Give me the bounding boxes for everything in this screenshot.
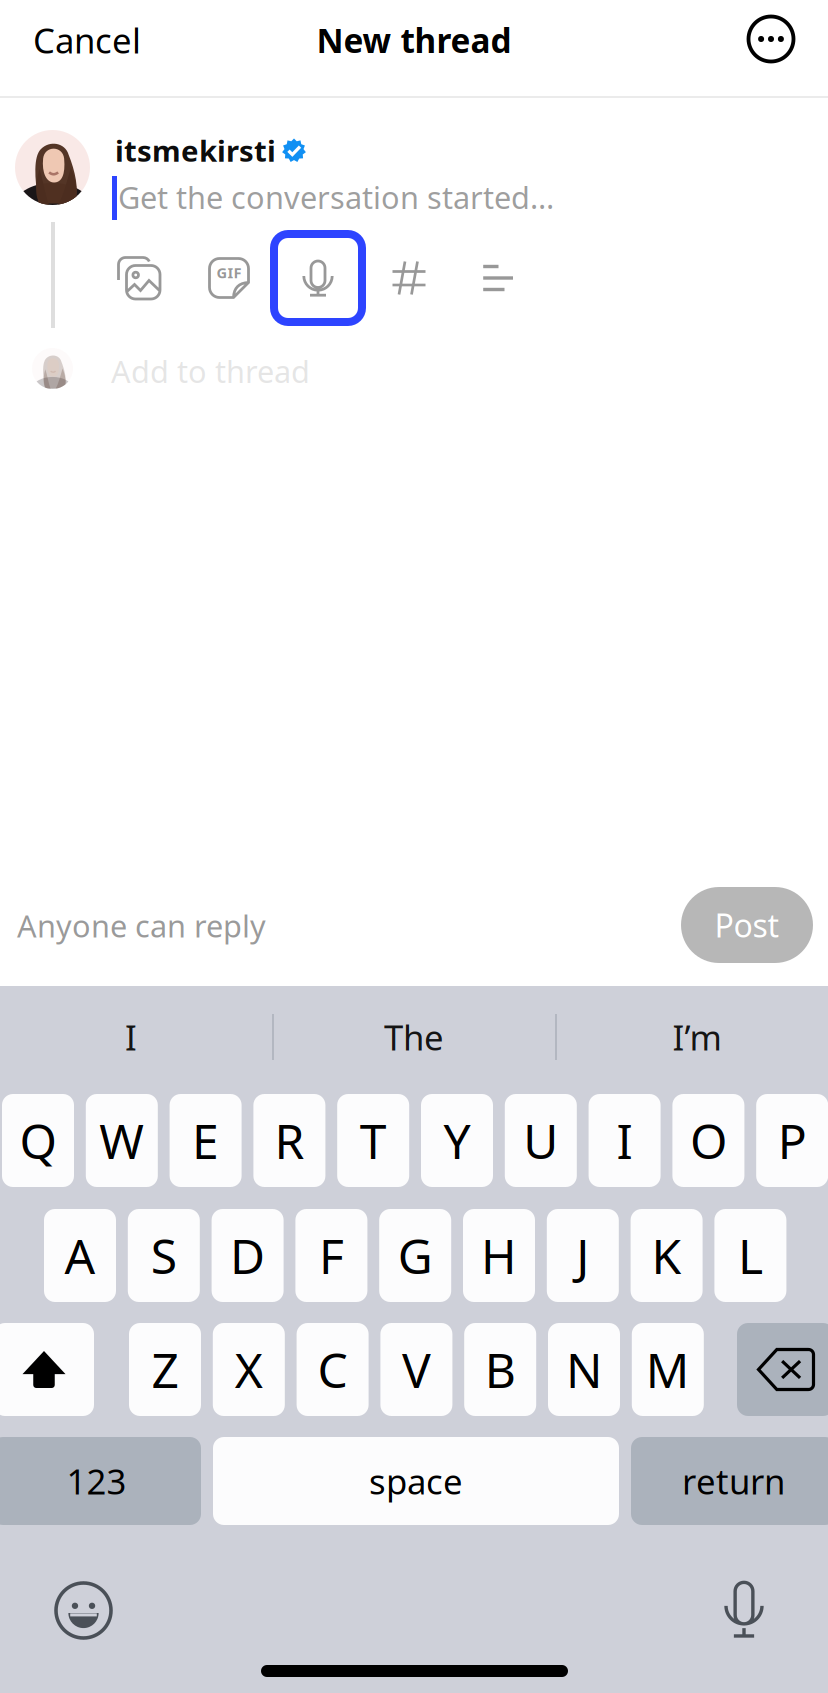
staticText: N: [566, 1338, 602, 1401]
staticText: I: [125, 1014, 137, 1060]
button[interactable]: E: [170, 1094, 242, 1187]
button[interactable]: Cancel: [33, 0, 193, 80]
staticText: Get the conversation started…: [118, 177, 554, 217]
staticText: M: [646, 1338, 690, 1401]
button[interactable]: Z: [129, 1323, 201, 1416]
button[interactable]: Record voice: [274, 234, 362, 322]
staticText: New thread: [316, 18, 511, 62]
button[interactable]: B: [464, 1323, 536, 1416]
button[interactable]: Delete: [737, 1323, 828, 1416]
button[interactable]: A: [44, 1209, 116, 1302]
staticText: X: [235, 1338, 263, 1401]
staticText: Post: [714, 904, 779, 946]
staticText: return: [682, 1458, 785, 1504]
staticText: E: [192, 1109, 219, 1172]
button[interactable]: W: [86, 1094, 158, 1187]
button[interactable]: Add to thread: [111, 351, 431, 391]
staticText: GIF: [216, 263, 241, 282]
button[interactable]: G: [379, 1209, 451, 1302]
staticText: U: [523, 1109, 558, 1172]
staticText: D: [230, 1224, 265, 1287]
staticText: F: [319, 1224, 344, 1287]
button[interactable]: Y: [421, 1094, 493, 1187]
button[interactable]: V: [380, 1323, 452, 1416]
staticText: Y: [443, 1109, 470, 1172]
button[interactable]: Add GIF: [194, 243, 264, 313]
button[interactable]: C: [297, 1323, 369, 1416]
button[interactable]: Emoji: [56, 1583, 111, 1638]
staticText: itsmekirsti: [115, 131, 276, 170]
button[interactable]: Shift: [0, 1323, 94, 1416]
button[interactable]: P: [756, 1094, 828, 1187]
staticText: I’m: [672, 1014, 721, 1060]
button[interactable]: I’m: [562, 1000, 828, 1074]
staticText: V: [402, 1338, 431, 1401]
button[interactable]: 123: [0, 1437, 201, 1525]
staticText: space: [369, 1458, 463, 1504]
staticText: O: [690, 1109, 727, 1172]
button[interactable]: F: [295, 1209, 367, 1302]
button[interactable]: space: [213, 1437, 619, 1525]
staticText: K: [652, 1224, 682, 1287]
button[interactable]: D: [212, 1209, 284, 1302]
staticText: G: [398, 1224, 433, 1287]
staticText: Z: [151, 1338, 178, 1401]
button[interactable]: return: [631, 1437, 828, 1525]
button[interactable]: Add photo: [104, 243, 174, 313]
staticText: W: [99, 1109, 144, 1172]
button[interactable]: S: [128, 1209, 200, 1302]
staticText: B: [485, 1338, 516, 1401]
button[interactable]: I: [0, 1000, 266, 1074]
button[interactable]: J: [547, 1209, 619, 1302]
button[interactable]: H: [463, 1209, 535, 1302]
button[interactable]: Anyone can reply: [17, 898, 347, 953]
button[interactable]: Post: [681, 887, 813, 963]
button[interactable]: R: [253, 1094, 325, 1187]
button[interactable]: L: [714, 1209, 786, 1302]
staticText: I: [617, 1109, 633, 1172]
button[interactable]: U: [505, 1094, 577, 1187]
staticText: T: [360, 1109, 387, 1172]
button[interactable]: T: [337, 1094, 409, 1187]
staticText: A: [64, 1224, 95, 1287]
staticText: Q: [19, 1109, 56, 1172]
button[interactable]: Add tag: [374, 243, 444, 313]
staticText: Anyone can reply: [17, 905, 266, 946]
button[interactable]: The: [279, 1000, 549, 1074]
staticText: Cancel: [33, 17, 141, 63]
button[interactable]: More options: [723, 0, 819, 79]
button[interactable]: X: [213, 1323, 285, 1416]
staticText: R: [274, 1109, 304, 1172]
button[interactable]: Q: [2, 1094, 74, 1187]
button[interactable]: I: [589, 1094, 661, 1187]
staticText: L: [738, 1224, 763, 1287]
staticText: Add to thread: [111, 351, 310, 391]
button[interactable]: Dictate: [725, 1580, 763, 1638]
button[interactable]: N: [548, 1323, 620, 1416]
staticText: The: [384, 1014, 444, 1060]
button[interactable]: M: [632, 1323, 704, 1416]
staticText: C: [318, 1338, 348, 1401]
staticText: 123: [66, 1458, 126, 1504]
staticText: H: [481, 1224, 517, 1287]
staticText: S: [151, 1224, 177, 1287]
staticText: J: [576, 1224, 589, 1287]
button[interactable]: Add poll: [463, 243, 533, 313]
staticText: P: [778, 1109, 807, 1172]
button[interactable]: K: [631, 1209, 703, 1302]
button[interactable]: O: [672, 1094, 744, 1187]
